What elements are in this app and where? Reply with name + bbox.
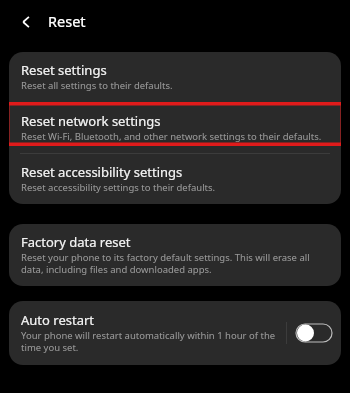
staticText: Reset accessibility settings: [21, 164, 183, 180]
button[interactable]: Back: [14, 9, 40, 35]
staticText: Reset Wi-Fi, Bluetooth, and other networ…: [21, 131, 322, 143]
button[interactable]: Auto restart toggle: [296, 322, 332, 344]
button[interactable]: Reset network settings: [9, 103, 341, 153]
staticText: Reset settings: [21, 62, 107, 78]
staticText: Reset all settings to their defaults.: [21, 80, 173, 92]
staticText: Reset accessibility settings to their de…: [21, 182, 216, 194]
staticText: Reset: [48, 14, 86, 30]
staticText: Reset network settings: [21, 113, 161, 129]
button[interactable]: Reset settings: [9, 52, 341, 102]
button[interactable]: Factory data reset: [9, 224, 341, 286]
staticText: Auto restart: [21, 312, 94, 328]
staticText: Your phone will restart automatically wi…: [21, 330, 280, 354]
button[interactable]: Auto restart: [9, 301, 341, 365]
staticText: Reset your phone to its factory default …: [21, 252, 327, 276]
button[interactable]: Reset accessibility settings: [9, 154, 341, 204]
staticText: Factory data reset: [21, 234, 131, 250]
